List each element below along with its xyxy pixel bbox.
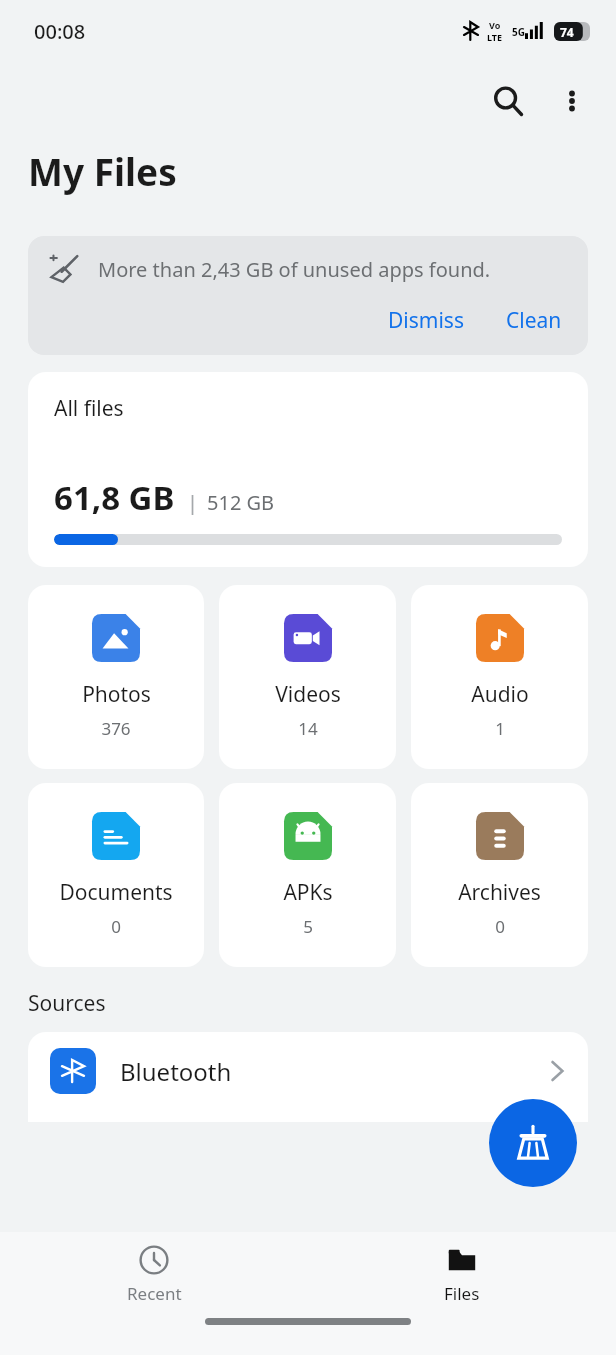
button[interactable]: Recent (0, 1245, 308, 1305)
staticText: 1 (495, 717, 505, 740)
button[interactable]: Bluetooth (28, 1032, 588, 1122)
staticText: Clean (506, 306, 562, 335)
staticText: Sources (28, 989, 106, 1018)
button[interactable]: APKs (219, 783, 396, 967)
button[interactable]: Photos (28, 585, 204, 769)
staticText: 74 (560, 24, 574, 40)
button[interactable]: Audio (411, 585, 588, 769)
staticText: APKs (283, 878, 333, 907)
staticText: Archives (458, 878, 541, 907)
button[interactable]: Dismiss (380, 302, 472, 339)
staticText: Recent (127, 1282, 182, 1305)
staticText: 376 (101, 717, 131, 740)
staticText: LTE (487, 31, 503, 43)
button[interactable]: Files (308, 1245, 616, 1305)
button[interactable]: Search (480, 73, 536, 129)
staticText: Files (444, 1282, 480, 1305)
staticText: Videos (275, 680, 341, 709)
button[interactable]: Videos (219, 585, 396, 769)
button[interactable]: Clean (498, 302, 570, 339)
staticText: All files (54, 394, 124, 423)
staticText: | (187, 489, 199, 516)
staticText: 14 (298, 717, 318, 740)
staticText: Documents (59, 878, 173, 907)
staticText: Photos (82, 680, 151, 709)
staticText: Bluetooth (120, 1055, 232, 1088)
staticText: 00:08 (34, 18, 86, 45)
staticText: 61,8 GB (54, 475, 175, 520)
staticText: 5 (303, 915, 313, 938)
staticText: Dismiss (388, 306, 464, 335)
staticText: Audio (471, 680, 529, 709)
staticText: Vo (489, 19, 501, 31)
button[interactable]: More than 2,43 GB of unused apps found. (28, 236, 588, 355)
staticText: More than 2,43 GB of unused apps found. (98, 256, 491, 283)
staticText: 512 GB (207, 489, 275, 516)
button[interactable]: All files (28, 372, 588, 567)
button[interactable]: Archives (411, 783, 588, 967)
staticText: 0 (495, 915, 505, 938)
button[interactable]: Documents (28, 783, 204, 967)
staticText: 5G (512, 25, 525, 39)
staticText: 0 (111, 915, 121, 938)
button[interactable]: More options (546, 75, 598, 127)
staticText: My Files (28, 146, 177, 196)
button[interactable]: Clean up storage (489, 1099, 577, 1187)
